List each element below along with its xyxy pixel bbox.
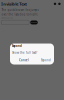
- staticText: Show the full text?: [12, 51, 37, 54]
- staticText: Expand: [41, 58, 51, 62]
- staticText: Invisible Text: [1, 1, 27, 6]
- button[interactable]: Expand: [33, 58, 51, 62]
- button[interactable]: Search: [53, 2, 57, 6]
- staticText: Cancel: [19, 58, 29, 62]
- staticText: The quick brown fox jumps: [1, 8, 38, 12]
- button[interactable]: Expand: [30, 20, 38, 24]
- staticText: over the lazy dog tonight.: [1, 13, 38, 16]
- button[interactable]: More options: [57, 2, 62, 6]
- button[interactable]: Cancel: [15, 58, 33, 62]
- staticText: Expand: [12, 44, 22, 48]
